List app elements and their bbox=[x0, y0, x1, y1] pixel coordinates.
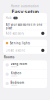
button[interactable]: Kitchen bbox=[3, 70, 47, 79]
staticText: 2 devices bbox=[11, 75, 18, 77]
button[interactable]: Living room bbox=[3, 60, 47, 69]
button[interactable]: Add accessory bbox=[3, 30, 47, 37]
staticText: All your accessories in one place bbox=[6, 23, 43, 30]
staticText: Bedroom bbox=[11, 81, 25, 84]
staticText: ON bbox=[14, 17, 16, 19]
button[interactable]: Hub bbox=[3, 13, 47, 23]
button[interactable]: Create a scene bbox=[3, 47, 47, 54]
staticText: 4 devices bbox=[11, 66, 18, 68]
staticText: Home automation bbox=[11, 4, 39, 8]
staticText: Kitchen bbox=[11, 71, 22, 75]
staticText: Easy setup bbox=[11, 8, 38, 15]
staticText: 3 devices bbox=[11, 84, 18, 86]
staticText: Create a scene bbox=[6, 49, 26, 52]
button[interactable]: All your accessories in one place bbox=[3, 23, 47, 30]
staticText: Add accessory bbox=[6, 32, 24, 35]
staticText: Rooms bbox=[4, 55, 14, 59]
staticText: Evening lights bbox=[10, 41, 30, 45]
button[interactable]: Bedroom bbox=[3, 79, 47, 88]
staticText: Living room bbox=[11, 62, 28, 66]
button[interactable]: Evening lights bbox=[3, 40, 47, 47]
staticText: Hub bbox=[6, 16, 12, 20]
